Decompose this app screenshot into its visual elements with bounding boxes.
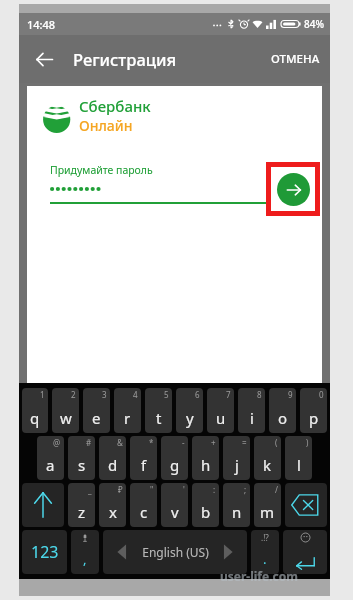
button[interactable]: : — [192, 483, 219, 527]
button[interactable]: 5 — [145, 388, 172, 433]
staticText: Сбербанк — [79, 96, 151, 116]
staticText: / — [275, 484, 278, 495]
button[interactable]: ' — [161, 483, 188, 527]
staticText: ; — [244, 484, 247, 495]
button[interactable]: English (US) — [103, 530, 247, 574]
button[interactable]: Continue — [277, 173, 310, 206]
staticText: ОТМЕНА — [271, 51, 320, 67]
staticText: - — [182, 437, 185, 448]
staticText: w — [60, 408, 72, 428]
staticText: " — [150, 484, 154, 495]
staticText: ( — [275, 437, 278, 448]
staticText: d — [108, 455, 118, 475]
button[interactable]: @ — [37, 436, 64, 480]
button[interactable]: 1 — [22, 388, 48, 433]
staticText: .!? — [261, 532, 269, 543]
button[interactable]: 8 — [238, 388, 265, 433]
staticText: u — [216, 408, 226, 428]
staticText: o — [278, 408, 288, 428]
button[interactable]: & — [99, 436, 126, 480]
staticText: 8 — [257, 389, 262, 400]
staticText: 7 — [226, 389, 231, 400]
button[interactable]: 9 — [269, 388, 296, 433]
staticText: k — [263, 455, 272, 475]
staticText: s — [78, 455, 86, 475]
button[interactable]: + — [192, 436, 219, 480]
button[interactable]: _ — [68, 483, 95, 527]
staticText: Регистрация — [73, 48, 177, 70]
button[interactable]: = — [223, 436, 250, 480]
staticText: n — [232, 502, 242, 522]
staticText: English (US) — [142, 544, 209, 560]
staticText: 14:48 — [27, 17, 56, 32]
staticText: i — [250, 408, 254, 428]
staticText: c — [140, 502, 148, 522]
staticText: # — [86, 437, 92, 448]
button[interactable]: 123 — [22, 530, 67, 574]
staticText: m — [260, 502, 275, 522]
staticText: q — [30, 408, 40, 428]
staticText: , — [83, 550, 87, 568]
staticText: z — [78, 502, 86, 522]
staticText: 6 — [195, 389, 200, 400]
staticText: e — [92, 408, 101, 428]
button[interactable]: ; — [223, 483, 250, 527]
staticText: 5 — [164, 389, 169, 400]
button[interactable]: 6 — [176, 388, 203, 433]
button[interactable]: " — [130, 483, 157, 527]
button[interactable]: - — [161, 436, 188, 480]
staticText: b — [201, 502, 211, 522]
staticText: v — [171, 502, 179, 522]
button[interactable]: ₽ — [99, 483, 126, 527]
staticText: Онлайн — [79, 116, 133, 135]
button[interactable]: # — [68, 436, 95, 480]
staticText: t — [156, 408, 162, 428]
button[interactable]: Shift — [22, 483, 64, 527]
button[interactable]: ) — [285, 436, 312, 480]
button[interactable]: Enter — [283, 530, 327, 574]
staticText: y — [186, 408, 194, 428]
button[interactable]: ОТМЕНА — [261, 35, 330, 83]
staticText: g — [170, 455, 180, 475]
staticText: x — [109, 502, 117, 522]
staticText: p — [309, 408, 319, 428]
staticText: 0 — [319, 389, 324, 400]
staticText: 123 — [31, 541, 59, 563]
staticText: f — [141, 455, 147, 475]
button[interactable]: ( — [254, 436, 281, 480]
staticText: 1 — [40, 389, 45, 400]
staticText: l — [297, 455, 301, 475]
staticText: ) — [306, 437, 309, 448]
button[interactable]: 7 — [207, 388, 234, 433]
staticText: j — [235, 455, 239, 475]
staticText: @ — [53, 437, 61, 448]
staticText: _ — [88, 484, 92, 495]
staticText: ' — [183, 484, 185, 495]
staticText: 2 — [71, 389, 76, 400]
button[interactable]: / — [254, 483, 281, 527]
button[interactable]: 2 — [52, 388, 79, 433]
staticText: 4 — [133, 389, 138, 400]
button[interactable]: .!? — [251, 530, 279, 574]
button[interactable]: 3 — [83, 388, 110, 433]
staticText: 84% — [304, 17, 324, 31]
button[interactable]: Back — [27, 42, 61, 76]
staticText: * — [149, 437, 154, 448]
staticText: : — [213, 484, 216, 495]
staticText: user-life.com — [220, 568, 298, 584]
button[interactable]: Backspace — [285, 483, 327, 527]
button[interactable]: 0 — [300, 388, 327, 433]
staticText: = — [242, 437, 247, 448]
staticText: . — [263, 550, 267, 568]
button[interactable]: * — [130, 436, 157, 480]
staticText: 3 — [102, 389, 107, 400]
staticText: 9 — [288, 389, 293, 400]
button[interactable]: , — [71, 530, 99, 574]
staticText: a — [46, 455, 55, 475]
staticText: Придумайте пароль — [50, 163, 153, 177]
staticText: + — [211, 437, 216, 448]
staticText: ₽ — [118, 484, 123, 495]
staticText: h — [201, 455, 211, 475]
staticText: & — [117, 437, 123, 448]
button[interactable]: 4 — [114, 388, 141, 433]
